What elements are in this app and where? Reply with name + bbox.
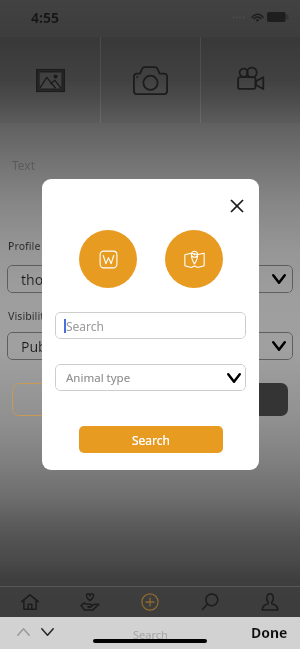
button[interactable]: Search <box>79 426 223 453</box>
staticText: 4:55 <box>31 8 59 27</box>
button[interactable]: Wikipedia <box>79 230 137 288</box>
button[interactable]: Search <box>55 312 246 339</box>
staticText: Visibility <box>8 309 50 323</box>
button[interactable]: Previous field <box>11 622 35 642</box>
button[interactable]: Home <box>0 586 60 617</box>
button[interactable]: Done <box>251 623 288 642</box>
staticText: Text <box>12 157 36 173</box>
button[interactable]: Cancel <box>12 383 144 416</box>
button[interactable]: Close <box>226 195 248 217</box>
staticText: thor <box>21 270 49 289</box>
staticText: Search <box>66 318 104 334</box>
staticText: Search <box>132 432 170 448</box>
button[interactable]: Favorites <box>60 586 120 617</box>
button[interactable]: Video <box>201 37 300 123</box>
button[interactable]: Map <box>165 230 223 288</box>
staticText: Animal type <box>66 370 131 386</box>
button[interactable]: thor <box>7 265 293 293</box>
button[interactable]: Gallery <box>0 37 100 123</box>
staticText: Profile <box>8 239 41 253</box>
button[interactable]: Camera <box>101 37 200 123</box>
button[interactable]: Search <box>180 586 240 617</box>
button[interactable]: Profile <box>240 586 300 617</box>
button[interactable]: Add <box>120 586 180 617</box>
button[interactable]: Publish <box>156 383 288 416</box>
staticText: Search <box>133 627 168 642</box>
staticText: Pubblico <box>21 337 78 356</box>
button[interactable]: Pubblico <box>7 332 293 360</box>
button[interactable]: Animal type <box>55 364 246 391</box>
staticText: Done <box>251 623 288 642</box>
button[interactable]: Next field <box>35 622 59 642</box>
